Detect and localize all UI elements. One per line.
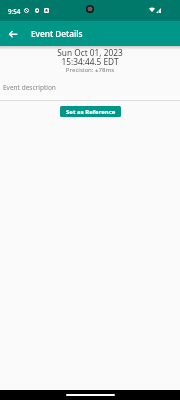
staticText: 9:54 — [8, 7, 21, 15]
button[interactable]: Back — [0, 21, 25, 46]
staticText: 15:34:44.5 EDT — [0, 56, 180, 67]
staticText: Sun Oct 01, 2023 — [0, 47, 180, 58]
staticText: Precision: ±78ms — [0, 65, 180, 73]
button[interactable]: Set as Reference — [60, 106, 121, 117]
staticText: Event description — [3, 83, 56, 92]
staticText: Event Details — [31, 28, 83, 39]
staticText: Set as Reference — [66, 108, 116, 116]
